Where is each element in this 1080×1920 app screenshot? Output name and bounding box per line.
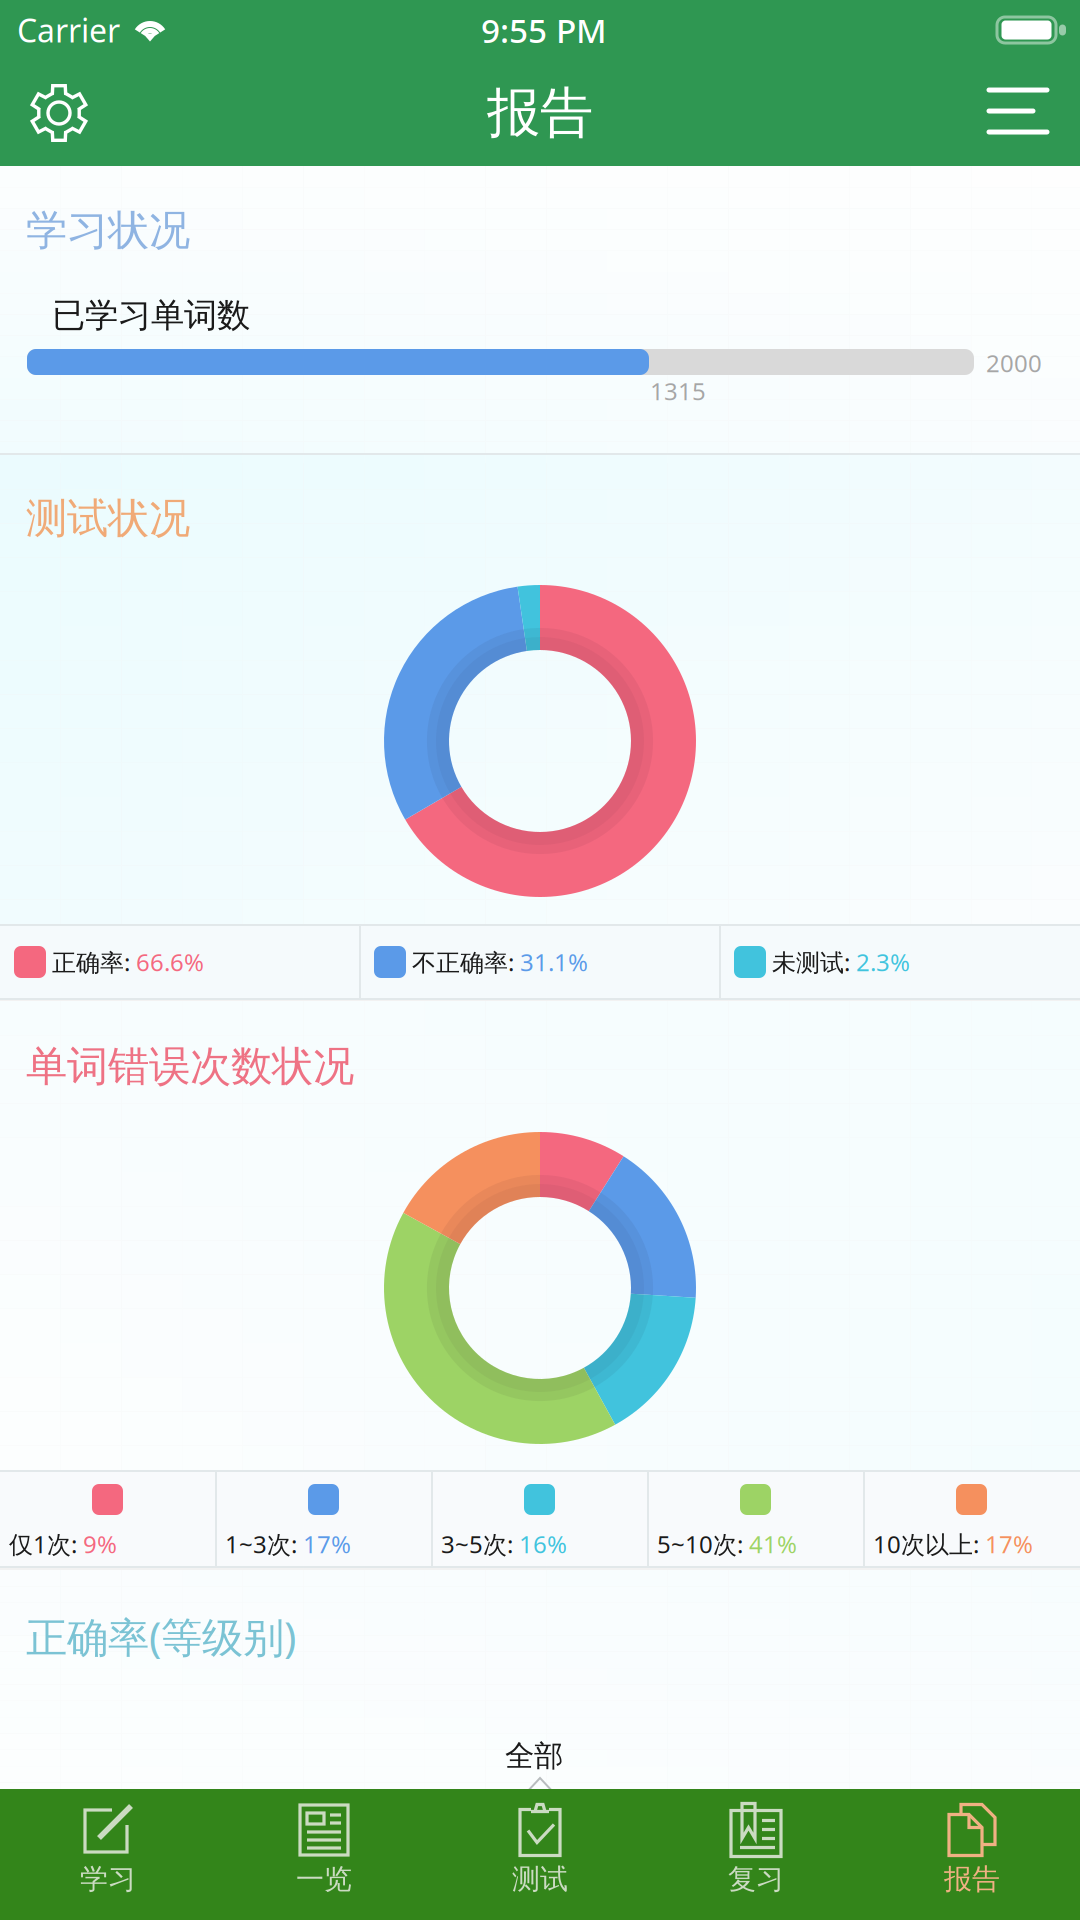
staticText: 一览: [296, 1862, 352, 1896]
staticText: 10次以上:: [873, 1528, 985, 1560]
staticText: 全部: [505, 1738, 563, 1774]
staticText: 17%: [303, 1528, 351, 1560]
staticText: 报告: [487, 80, 593, 146]
staticText: 报告: [944, 1862, 1000, 1896]
staticText: 正确率(等级别): [26, 1609, 296, 1664]
staticText: 测试: [512, 1862, 568, 1896]
staticText: Carrier: [17, 9, 120, 51]
staticText: 学习: [80, 1862, 136, 1896]
button[interactable]: 学习: [0, 1789, 216, 1920]
staticText: 未测试:: [772, 946, 856, 978]
staticText: 5~10次:: [657, 1528, 749, 1560]
button[interactable]: 一览: [216, 1789, 432, 1920]
staticText: 9:55 PM: [481, 8, 607, 52]
staticText: 1315: [650, 375, 706, 407]
staticText: 正确率:: [52, 946, 136, 978]
staticText: 9%: [83, 1528, 117, 1560]
staticText: 17%: [985, 1528, 1033, 1560]
staticText: 31.1%: [520, 946, 588, 978]
staticText: 16%: [519, 1528, 567, 1560]
staticText: 单词错误次数状况: [26, 1041, 354, 1092]
staticText: 2.3%: [856, 946, 910, 978]
staticText: 2000: [986, 347, 1042, 379]
staticText: 3~5次:: [441, 1528, 519, 1560]
staticText: 66.6%: [136, 946, 204, 978]
staticText: 仅1次:: [9, 1528, 83, 1560]
staticText: 学习状况: [26, 205, 190, 256]
button[interactable]: 报告: [864, 1789, 1080, 1920]
staticText: 复习: [728, 1862, 784, 1896]
staticText: 41%: [749, 1528, 797, 1560]
staticText: 不正确率:: [412, 946, 520, 978]
button[interactable]: 复习: [648, 1789, 864, 1920]
staticText: 已学习单词数: [52, 295, 250, 336]
button[interactable]: 菜单: [956, 60, 1066, 166]
button[interactable]: 设置: [4, 60, 114, 166]
staticText: 1~3次:: [225, 1528, 303, 1560]
button[interactable]: 测试: [432, 1789, 648, 1920]
staticText: 测试状况: [26, 493, 190, 544]
